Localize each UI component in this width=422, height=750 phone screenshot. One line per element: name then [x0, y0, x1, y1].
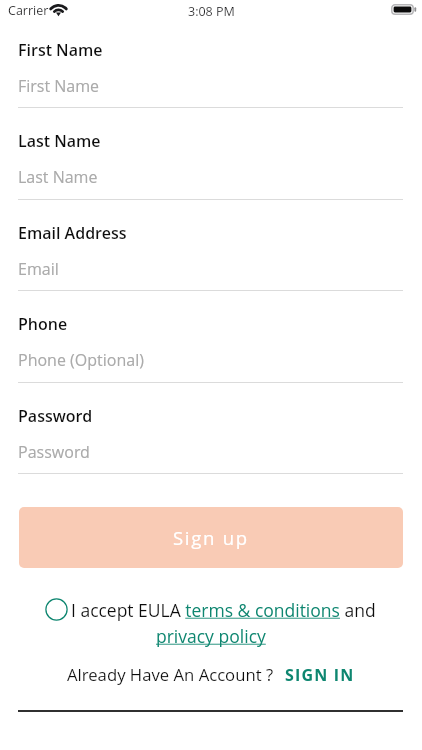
- button[interactable]: I accept EULA terms & conditions and: [71, 598, 376, 622]
- staticText: First Name: [18, 39, 103, 61]
- staticText: Password: [18, 405, 93, 427]
- button[interactable]: privacy policy: [156, 624, 266, 648]
- staticText: Last Name: [18, 130, 101, 152]
- staticText: Sign up: [173, 525, 249, 550]
- button[interactable]: Accept EULA checkbox: [45, 598, 68, 621]
- staticText: Email Address: [18, 222, 127, 244]
- staticText: Last Name: [18, 166, 98, 188]
- staticText: Already Have An Account ?: [67, 663, 274, 686]
- button[interactable]: Sign up: [19, 507, 403, 568]
- staticText: Carrier: [8, 2, 49, 19]
- staticText: First Name: [18, 75, 100, 97]
- button[interactable]: SIGN IN: [285, 664, 355, 686]
- staticText: Phone (Optional): [18, 349, 144, 371]
- staticText: Email: [18, 258, 59, 280]
- staticText: Phone: [18, 313, 68, 335]
- staticText: 3:08 PM: [188, 3, 235, 20]
- staticText: Password: [18, 441, 90, 463]
